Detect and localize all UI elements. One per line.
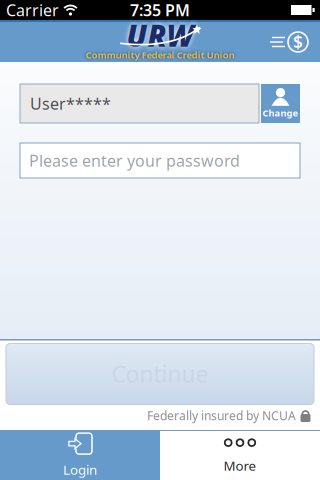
staticText: Please enter your password xyxy=(29,150,240,171)
button[interactable]: Password xyxy=(20,143,300,178)
staticText: User***** xyxy=(30,93,111,114)
staticText: URW xyxy=(126,16,193,55)
staticText: 7:35 PM xyxy=(130,0,190,21)
staticText: $ xyxy=(293,30,303,53)
button[interactable]: Change user xyxy=(261,84,300,123)
staticText: Change xyxy=(262,107,298,119)
staticText: Community Federal Credit Union xyxy=(85,49,234,61)
staticText: More xyxy=(223,457,256,474)
button[interactable]: Rates xyxy=(266,22,312,62)
staticText: Login xyxy=(63,461,97,478)
staticText: Continue xyxy=(111,359,208,389)
button[interactable]: More tab xyxy=(160,430,320,480)
button[interactable]: Username xyxy=(20,84,259,123)
button[interactable]: Login tab xyxy=(0,430,160,480)
staticText: Federally insured by NCUA xyxy=(147,407,296,423)
staticText: Carrier xyxy=(6,0,59,21)
button[interactable]: Continue xyxy=(6,343,314,404)
